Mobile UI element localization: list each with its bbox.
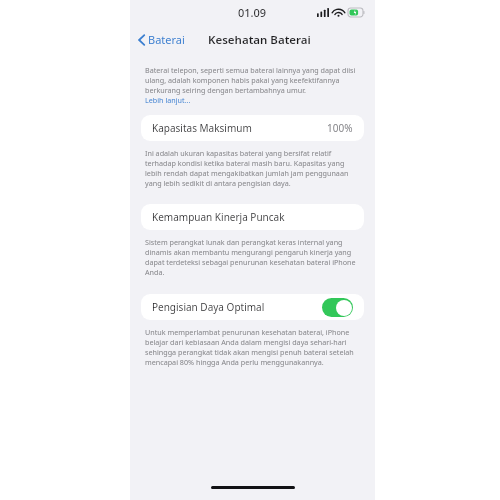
button[interactable]: Pengisian Daya Optimal toggle	[322, 298, 353, 317]
staticText: Untuk memperlambat penurunan kesehatan b…	[145, 327, 361, 367]
staticText: Ini adalah ukuran kapasitas baterai yang…	[145, 148, 361, 188]
button[interactable]: Kapasitas Maksimum	[141, 115, 364, 141]
staticText: Kapasitas Maksimum	[152, 121, 252, 135]
staticText: Pengisian Daya Optimal	[152, 300, 265, 314]
staticText: Kesehatan Baterai	[208, 32, 311, 48]
staticText: 100%	[327, 121, 353, 135]
staticText: Sistem perangkat lunak dan perangkat ker…	[145, 237, 361, 277]
staticText: Baterai	[148, 32, 185, 47]
button[interactable]: Pengisian Daya Optimal	[141, 294, 364, 320]
button[interactable]: Baterai	[130, 30, 191, 49]
staticText: 01.09	[238, 5, 267, 20]
staticText: Baterai telepon, seperti semua baterai l…	[145, 65, 361, 95]
button[interactable]: Kemampuan Kinerja Puncak	[141, 204, 364, 230]
staticText: Kemampuan Kinerja Puncak	[152, 210, 285, 224]
button[interactable]: Lebih lanjut...	[145, 95, 191, 105]
